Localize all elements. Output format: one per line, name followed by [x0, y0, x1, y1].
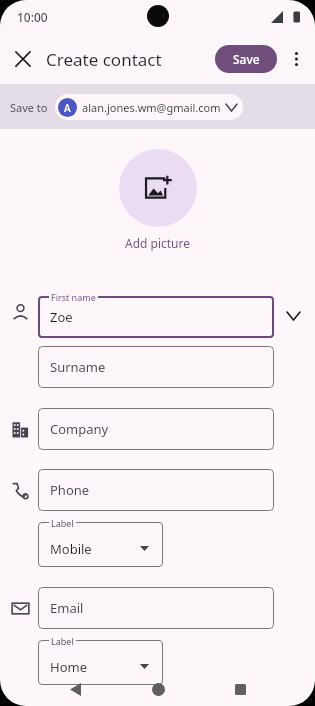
staticText: Save to — [10, 100, 48, 115]
button[interactable]: Surname — [38, 346, 274, 388]
button[interactable]: Home — [145, 676, 171, 702]
button[interactable]: Label — [38, 522, 163, 567]
staticText: Phone — [50, 481, 90, 499]
staticText: Home — [50, 658, 87, 676]
button[interactable]: Recent apps — [227, 676, 253, 702]
staticText: Mobile — [50, 540, 92, 558]
staticText: Email — [50, 599, 84, 617]
button[interactable]: A — [55, 94, 243, 120]
button[interactable]: Save — [215, 45, 277, 73]
staticText: Zoe — [50, 308, 73, 326]
staticText: Label — [51, 517, 74, 529]
staticText: alan.jones.wm@gmail.com — [82, 100, 221, 115]
staticText: Company — [50, 420, 109, 438]
button[interactable]: Close — [6, 42, 40, 76]
button[interactable]: Back — [62, 676, 88, 702]
staticText: Save — [233, 51, 260, 67]
button[interactable]: More options — [280, 43, 312, 75]
staticText: Add picture — [125, 235, 191, 251]
button[interactable]: Phone — [38, 469, 274, 511]
staticText: Label — [51, 635, 74, 647]
button[interactable]: Label — [38, 640, 163, 685]
button[interactable]: More name fields — [280, 303, 306, 329]
staticText: 10:00 — [17, 9, 48, 25]
staticText: Surname — [50, 358, 106, 376]
button[interactable]: Email — [38, 587, 274, 629]
staticText: A — [64, 101, 71, 115]
staticText: Create contact — [46, 48, 162, 71]
button[interactable]: Add picture — [119, 149, 197, 227]
button[interactable]: Company — [38, 408, 274, 450]
staticText: First name — [51, 291, 96, 303]
